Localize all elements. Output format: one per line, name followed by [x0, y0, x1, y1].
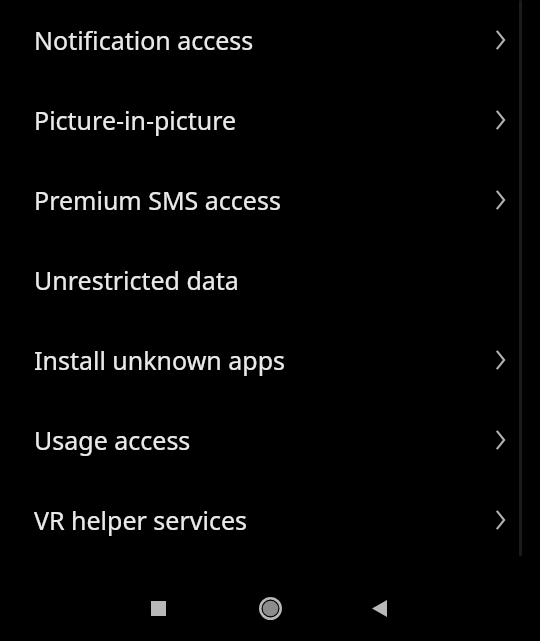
- button[interactable]: VR helper services: [0, 480, 540, 560]
- staticText: Unrestricted data: [34, 263, 239, 297]
- button[interactable]: Unrestricted data: [0, 240, 540, 320]
- staticText: VR helper services: [34, 503, 247, 537]
- button[interactable]: Home: [246, 584, 294, 632]
- staticText: Install unknown apps: [34, 343, 286, 377]
- button[interactable]: Back: [355, 584, 403, 632]
- button[interactable]: Premium SMS access: [0, 160, 540, 240]
- button[interactable]: Usage access: [0, 400, 540, 480]
- staticText: Premium SMS access: [34, 183, 281, 217]
- button[interactable]: Recent apps: [134, 584, 182, 632]
- button[interactable]: Install unknown apps: [0, 320, 540, 400]
- staticText: Picture-in-picture: [34, 103, 237, 137]
- button[interactable]: Picture-in-picture: [0, 80, 540, 160]
- button[interactable]: Notification access: [0, 0, 540, 80]
- staticText: Usage access: [34, 423, 191, 457]
- staticText: Notification access: [34, 23, 254, 57]
